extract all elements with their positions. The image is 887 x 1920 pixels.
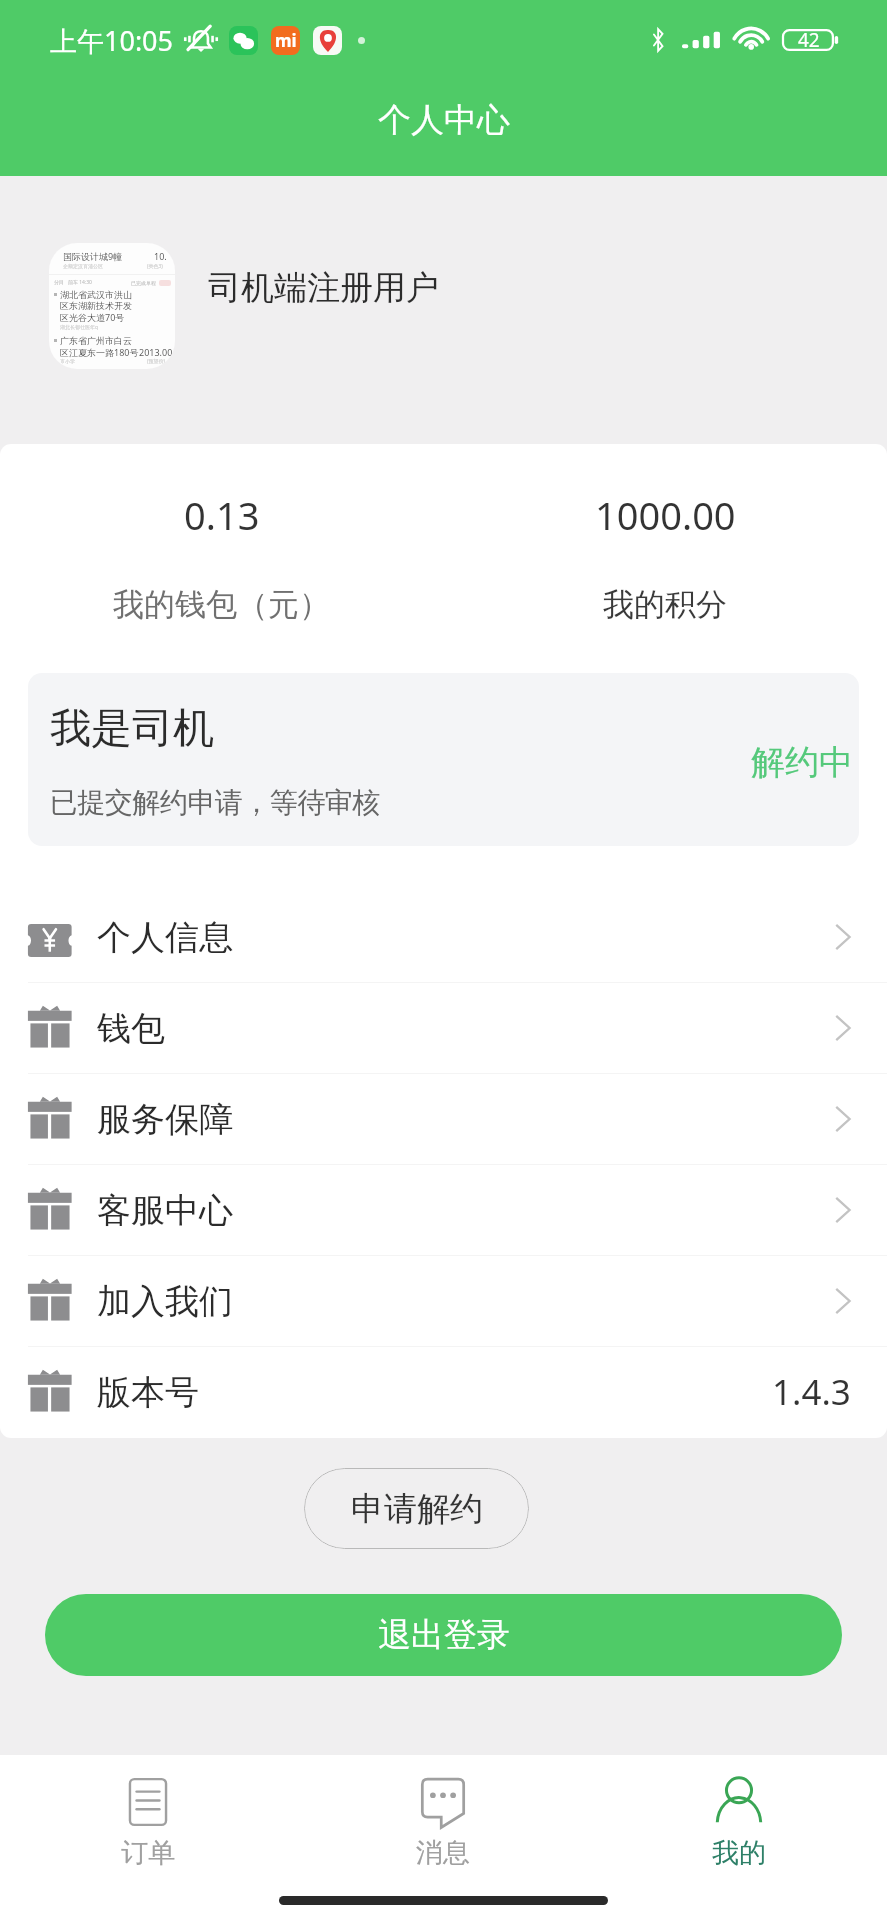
staticText: 司机端注册用户 [208,267,439,309]
staticText: 湖北长都仕医年q [60,324,99,331]
staticText: 分目 前车 14:30 [54,279,92,286]
staticText: 区光谷大道70号 [60,311,125,323]
staticText: 申请解约 [351,1488,483,1530]
button[interactable]: 个人信息 [0,892,887,982]
button[interactable]: 消息 [295,1755,591,1883]
staticText: 区江夏东一路180号 [60,346,139,358]
button[interactable]: 客服中心 [0,1165,887,1255]
staticText: 消息 [416,1836,470,1870]
other: 个人信息 [833,923,851,951]
staticText: (类色3) [147,263,163,270]
staticText: 10. [154,250,167,262]
staticText: 上午10:05 [50,22,174,59]
staticText: 我的钱包（元） [113,585,330,624]
other: 客服中心 [833,1196,851,1224]
staticText: 已完成单程 [131,280,156,286]
staticText: 钱包 [97,1007,165,1050]
staticText: 已提交解约申请，等待审核 [50,785,380,820]
staticText: 退出登录 [378,1614,510,1656]
staticText: 区东湖新技术开发 [60,300,132,311]
button[interactable]: 我的 [591,1755,887,1883]
staticText: 广东省广州市白云 [60,335,132,346]
other: 服务保障 [833,1105,851,1133]
staticText: 加入我们 [97,1280,233,1323]
other: 钱包 [833,1014,851,1042]
staticText: 个人中心 [378,99,510,141]
staticText: 1.4.3 [772,1368,851,1416]
staticText: 2013.00 [139,346,173,358]
staticText: 服务保障 [97,1098,233,1141]
button[interactable]: 服务保障 [0,1074,887,1164]
staticText: 国际设计城9幢 [63,250,123,262]
staticText: 版本号 [97,1371,199,1414]
button[interactable]: 版本号 [0,1347,887,1437]
staticText: 企额定汉百浦公区 [63,263,103,269]
button[interactable]: 订单 [0,1755,295,1883]
button[interactable]: 退出登录 [45,1594,842,1676]
button[interactable]: 国际设计城9幢 [0,176,887,444]
button[interactable]: 加入我们 [0,1256,887,1346]
staticText: 42 [798,27,820,53]
staticText: mi [275,29,297,52]
staticText: 市小学 [60,358,75,364]
button[interactable]: 我是司机 [28,673,859,846]
other: 加入我们 [833,1287,851,1315]
staticText: 我是司机 [50,703,214,755]
button[interactable]: 申请解约 [304,1468,529,1549]
staticText: 我的 [712,1836,766,1870]
button[interactable]: 钱包 [0,983,887,1073]
staticText: 个人信息 [97,916,233,959]
staticText: 1000.00 [595,489,736,541]
staticText: 客服中心 [97,1189,233,1232]
staticText: 0.13 [184,489,260,541]
staticText: (预望价) [147,358,166,365]
staticText: 解约中 [751,741,853,784]
staticText: 我的积分 [603,585,727,624]
staticText: 湖北省武汉市洪山 [60,289,132,300]
staticText: 订单 [121,1836,175,1870]
